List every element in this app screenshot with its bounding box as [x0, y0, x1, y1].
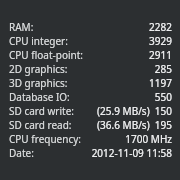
staticText: 3929: [149, 34, 172, 48]
button[interactable]: Date:: [0, 146, 180, 160]
staticText: 2D graphics:: [9, 62, 68, 76]
staticText: 2911: [149, 48, 172, 62]
staticText: 285: [154, 62, 172, 76]
button[interactable]: Database IO:: [0, 90, 180, 104]
staticText: 1700 MHz: [125, 132, 172, 146]
button[interactable]: SD card read:: [0, 118, 180, 132]
staticText: CPU integer:: [9, 34, 68, 48]
staticText: 1197: [149, 76, 172, 90]
staticText: Date:: [9, 146, 34, 160]
button[interactable]: CPU frequency:: [0, 132, 180, 146]
button[interactable]: CPU float-point:: [0, 48, 180, 62]
staticText: RAM:: [9, 20, 34, 34]
button[interactable]: SD card write:: [0, 104, 180, 118]
staticText: SD card write:: [9, 104, 74, 118]
staticText: Database IO:: [9, 90, 70, 104]
staticText: (36.6 MB/s) 195: [97, 118, 172, 132]
staticText: 2282: [149, 20, 172, 34]
staticText: SD card read:: [9, 118, 72, 132]
button[interactable]: RAM:: [0, 20, 180, 34]
button[interactable]: CPU integer:: [0, 34, 180, 48]
staticText: CPU float-point:: [9, 48, 84, 62]
staticText: 2012-11-09 11:58: [91, 146, 172, 160]
staticText: 3D graphics:: [9, 76, 68, 90]
staticText: (25.9 MB/s) 150: [97, 104, 172, 118]
staticText: 550: [154, 90, 172, 104]
staticText: CPU frequency:: [9, 132, 82, 146]
button[interactable]: 3D graphics:: [0, 76, 180, 90]
button[interactable]: 2D graphics:: [0, 62, 180, 76]
